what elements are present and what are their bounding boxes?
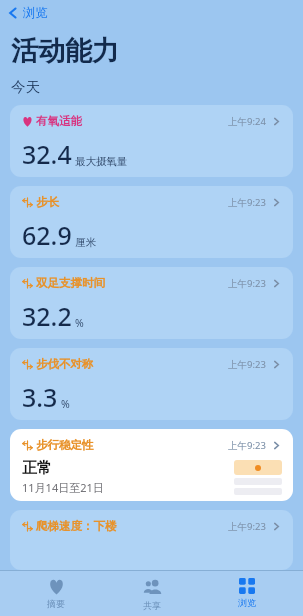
staticText: 上午9:23: [228, 196, 266, 209]
button[interactable]: 步伐不对称: [10, 348, 293, 420]
staticText: 爬梯速度：下楼: [36, 519, 117, 533]
staticText: 62.9: [22, 218, 72, 252]
staticText: 摘要: [47, 598, 65, 609]
staticText: 浏览: [238, 597, 256, 608]
staticText: %: [75, 316, 84, 330]
button[interactable]: 有氧适能: [10, 105, 293, 177]
staticText: 有氧适能: [36, 114, 82, 128]
button[interactable]: 爬梯速度：下楼: [10, 510, 293, 570]
staticText: 上午9:23: [228, 358, 266, 371]
button[interactable]: 双足支撑时间: [10, 267, 293, 339]
staticText: 上午9:23: [228, 277, 266, 290]
button[interactable]: 摘要: [16, 571, 96, 616]
staticText: 最大摄氧量: [75, 155, 128, 168]
staticText: 步行稳定性: [36, 438, 94, 452]
staticText: 厘米: [75, 236, 96, 249]
button[interactable]: 浏览: [207, 571, 287, 616]
button[interactable]: 浏览: [0, 0, 303, 26]
staticText: 步伐不对称: [36, 357, 94, 371]
staticText: 步长: [36, 195, 59, 209]
staticText: 正常: [22, 459, 52, 478]
staticText: 11月14日至21日: [22, 480, 104, 495]
staticText: %: [61, 397, 70, 411]
staticText: 浏览: [23, 5, 48, 21]
staticText: 共享: [143, 600, 161, 611]
staticText: 双足支撑时间: [36, 276, 105, 290]
staticText: 上午9:23: [228, 439, 266, 452]
staticText: 今天: [11, 78, 40, 96]
staticText: 32.2: [22, 299, 72, 333]
staticText: 活动能力: [11, 34, 119, 68]
staticText: 3.3: [22, 380, 58, 414]
button[interactable]: 步行稳定性: [10, 429, 293, 501]
staticText: 上午9:24: [228, 115, 266, 128]
button[interactable]: 步长: [10, 186, 293, 258]
staticText: 上午9:23: [228, 520, 266, 533]
button[interactable]: 共享: [112, 571, 192, 616]
staticText: 32.4: [22, 137, 72, 171]
